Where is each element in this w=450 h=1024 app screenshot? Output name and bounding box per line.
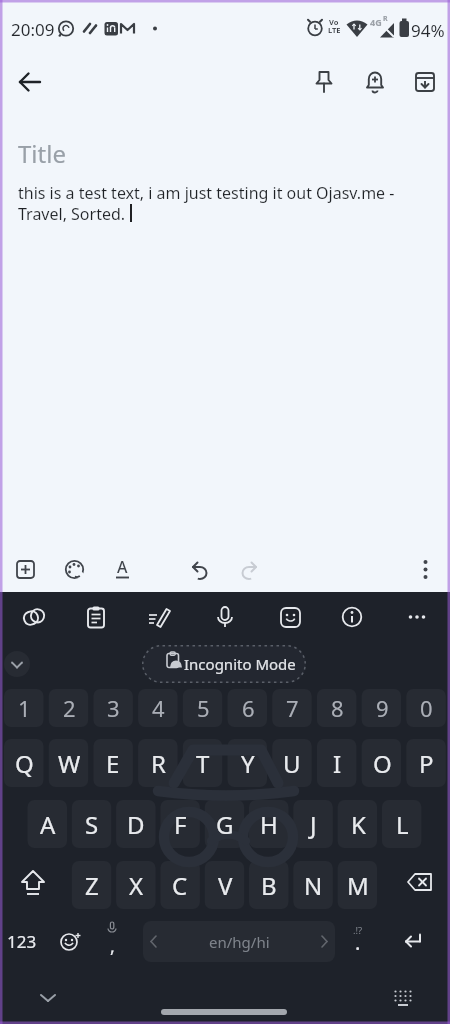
button[interactable]: Z <box>72 861 112 909</box>
button[interactable]: I <box>317 739 357 787</box>
button[interactable] <box>234 554 265 585</box>
button[interactable]: W <box>49 739 89 787</box>
button[interactable]: E <box>93 739 133 787</box>
button[interactable]: 3 <box>93 689 133 727</box>
staticText: 6 <box>242 693 255 723</box>
staticText: 1 <box>18 693 31 723</box>
button[interactable]: Y <box>228 739 268 787</box>
button[interactable]: .!? <box>336 921 380 962</box>
button[interactable]: Q <box>4 739 44 787</box>
staticText: 9 <box>376 693 389 723</box>
button[interactable] <box>144 602 174 632</box>
staticText: Z <box>85 869 99 902</box>
staticText: 7 <box>286 693 299 723</box>
button[interactable]: 7 <box>272 689 312 727</box>
button[interactable]: 5 <box>183 689 223 727</box>
button[interactable] <box>184 554 215 585</box>
button[interactable]: F <box>160 800 200 848</box>
button[interactable]: R <box>138 739 178 787</box>
button[interactable] <box>14 66 46 98</box>
button[interactable]: O <box>362 739 402 787</box>
button[interactable]: A <box>107 554 138 585</box>
button[interactable] <box>210 602 240 632</box>
button[interactable]: J <box>293 800 333 848</box>
button[interactable]: 6 <box>228 689 268 727</box>
button[interactable]: 9 <box>362 689 402 727</box>
button[interactable]: C <box>160 861 200 909</box>
button[interactable] <box>410 554 441 585</box>
button[interactable] <box>308 66 340 98</box>
staticText: H <box>260 808 278 841</box>
staticText: 0 <box>420 693 433 723</box>
button[interactable] <box>19 602 49 632</box>
button[interactable]: 123 <box>0 921 44 962</box>
button[interactable] <box>10 554 41 585</box>
button[interactable]: K <box>338 800 378 848</box>
staticText: LTE <box>328 25 341 35</box>
staticText: L <box>396 808 409 841</box>
staticText: F <box>174 808 187 841</box>
button[interactable]: 4 <box>138 689 178 727</box>
button[interactable] <box>337 602 367 632</box>
button[interactable]: P <box>406 739 446 787</box>
button[interactable]: T <box>183 739 223 787</box>
staticText: M <box>347 869 369 902</box>
staticText: Travel, Sorted. <box>18 203 126 225</box>
staticText: N <box>304 869 323 902</box>
button[interactable]: V <box>205 861 245 909</box>
staticText: E <box>106 747 120 780</box>
staticText: Vo <box>329 17 339 27</box>
button[interactable]: X <box>116 861 156 909</box>
button[interactable] <box>161 1002 287 1022</box>
button[interactable]: B <box>249 861 289 909</box>
staticText: B <box>261 869 277 902</box>
button[interactable] <box>390 985 416 1011</box>
staticText: 2 <box>63 693 76 723</box>
staticText: 4 <box>152 693 165 723</box>
button[interactable] <box>4 861 62 909</box>
button[interactable] <box>390 861 446 909</box>
button[interactable] <box>34 984 62 1012</box>
button[interactable]: , <box>90 921 134 962</box>
button[interactable] <box>4 651 30 677</box>
staticText: W <box>58 747 81 780</box>
staticText: K <box>351 808 366 841</box>
button[interactable]: en/hg/hi <box>143 921 335 962</box>
button[interactable]: 0 <box>406 689 446 727</box>
button[interactable] <box>48 921 92 962</box>
staticText: Title <box>18 137 66 170</box>
staticText: this is a test text, i am just testing i… <box>18 182 395 204</box>
button[interactable]: A <box>28 800 68 848</box>
button[interactable] <box>380 921 446 962</box>
staticText: en/hg/hi <box>209 932 270 952</box>
button[interactable]: G <box>205 800 245 848</box>
staticText: O <box>373 747 392 780</box>
button[interactable]: M <box>338 861 378 909</box>
button[interactable]: N <box>293 861 333 909</box>
staticText: R <box>151 747 166 780</box>
button[interactable]: H <box>249 800 289 848</box>
staticText: A <box>117 556 128 578</box>
staticText: X <box>129 869 144 902</box>
staticText: 20:09 <box>11 18 55 41</box>
button[interactable] <box>359 66 391 98</box>
staticText: S <box>85 808 99 841</box>
button[interactable]: D <box>116 800 156 848</box>
button[interactable] <box>275 602 305 632</box>
button[interactable] <box>59 554 90 585</box>
button[interactable] <box>409 66 441 98</box>
button[interactable]: L <box>382 800 422 848</box>
staticText: P <box>419 747 434 780</box>
button[interactable] <box>81 602 111 632</box>
button[interactable]: 1 <box>4 689 44 727</box>
button[interactable]: 8 <box>317 689 357 727</box>
button[interactable] <box>402 602 432 632</box>
button[interactable]: U <box>272 739 312 787</box>
button[interactable]: Incognito Mode <box>142 645 306 683</box>
button[interactable]: S <box>72 800 112 848</box>
button[interactable]: 2 <box>49 689 89 727</box>
staticText: U <box>283 747 301 780</box>
staticText: 4G <box>370 16 382 28</box>
staticText: .!? <box>353 924 363 937</box>
staticText: I <box>333 747 342 780</box>
